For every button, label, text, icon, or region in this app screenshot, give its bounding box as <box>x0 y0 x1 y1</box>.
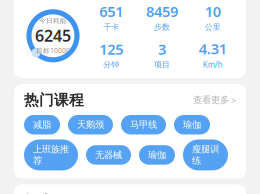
staticText: 马甲线 <box>130 119 157 130</box>
staticText: 瑜伽 <box>183 119 201 130</box>
staticText: 公里 <box>205 22 221 32</box>
staticText: 查看更多 <box>193 94 229 106</box>
staticText: 步数 <box>154 22 170 32</box>
staticText: 125 <box>99 39 123 59</box>
staticText: 651 <box>99 2 123 21</box>
staticText: 上班族推荐 <box>33 143 69 166</box>
button[interactable]: 马甲线 <box>121 115 166 134</box>
staticText: 3 <box>158 39 166 59</box>
button[interactable]: 瘦腿训练 <box>183 139 228 170</box>
staticText: > <box>231 94 236 106</box>
staticText: 今日耗能 <box>39 17 67 25</box>
button[interactable]: 上班族推荐 <box>24 139 78 170</box>
staticText: 分钟 <box>103 60 119 70</box>
staticText: 瘦腿训练 <box>192 143 219 166</box>
staticText: 无器械 <box>95 149 122 161</box>
button[interactable]: 查看更多 <box>193 94 236 106</box>
staticText: 热门课程 <box>24 91 84 109</box>
button[interactable]: 减脂 <box>24 115 60 134</box>
button[interactable]: 无器械 <box>86 145 131 165</box>
staticText: 瑜伽 <box>148 149 166 161</box>
staticText: 目标10000 <box>36 46 70 55</box>
staticText: 千卡 <box>103 22 119 32</box>
staticText: 10 <box>205 2 221 21</box>
staticText: 减脂 <box>33 119 51 130</box>
staticText: 4.31 <box>199 39 227 58</box>
staticText: Km/h <box>203 59 223 70</box>
button[interactable]: 天鹅颈 <box>68 115 113 134</box>
button[interactable]: 瑜伽 <box>174 115 210 134</box>
staticText: 天鹅颈 <box>77 119 104 130</box>
staticText: 8459 <box>146 2 178 21</box>
staticText: 项目 <box>154 60 170 70</box>
staticText: 打卡 <box>24 192 54 194</box>
button[interactable]: 瑜伽 <box>139 145 175 165</box>
staticText: 6245 <box>35 25 71 46</box>
